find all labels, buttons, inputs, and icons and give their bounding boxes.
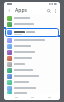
- button[interactable]: Recents: [44, 94, 54, 100]
- button[interactable]: [4, 43, 60, 49]
- button[interactable]: Back: [6, 7, 13, 14]
- button[interactable]: Search: [45, 7, 52, 14]
- button[interactable]: [4, 61, 60, 67]
- button[interactable]: Back: [11, 94, 21, 100]
- button[interactable]: [4, 79, 60, 85]
- button[interactable]: [4, 37, 60, 43]
- button[interactable]: [4, 73, 60, 79]
- button[interactable]: [4, 67, 60, 73]
- button[interactable]: [4, 85, 60, 91]
- button[interactable]: [4, 91, 60, 94]
- button[interactable]: More options: [52, 8, 58, 14]
- button[interactable]: [4, 49, 60, 55]
- button[interactable]: [5, 28, 59, 37]
- button[interactable]: Home: [27, 94, 37, 100]
- button[interactable]: [4, 21, 60, 27]
- button[interactable]: [4, 55, 60, 61]
- staticText: Apps: [15, 7, 27, 14]
- button[interactable]: [4, 15, 60, 21]
